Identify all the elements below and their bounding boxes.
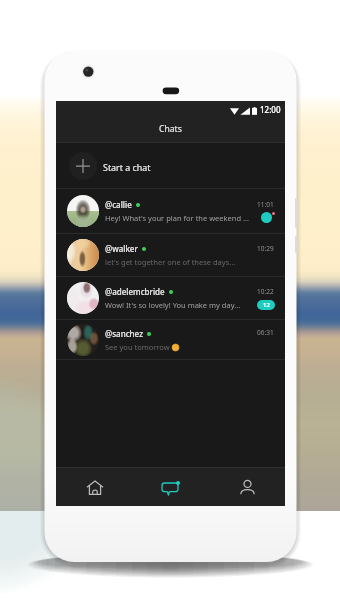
staticText: @walker xyxy=(105,243,138,254)
staticText: Wow! It's so lovely! You make my day... xyxy=(105,300,241,310)
staticText: See you tomorrow xyxy=(105,342,170,352)
button[interactable]: @callie xyxy=(56,189,285,233)
staticText: 10:29 xyxy=(257,244,274,253)
staticText: 11:01 xyxy=(257,200,274,209)
button[interactable]: Start a chat xyxy=(56,143,285,188)
staticText: let's get together one of these days... xyxy=(105,257,236,267)
button[interactable]: Home xyxy=(56,468,133,506)
staticText: Start a chat xyxy=(103,161,151,173)
staticText: Chats xyxy=(159,123,182,135)
staticText: 12 xyxy=(263,301,270,309)
staticText: 06:31 xyxy=(257,328,274,337)
staticText: 10:22 xyxy=(257,287,274,296)
button[interactable]: Chats xyxy=(133,468,209,506)
staticText: 12:00 xyxy=(260,104,281,115)
button[interactable]: Profile xyxy=(209,468,285,506)
staticText: @sanchez xyxy=(105,328,143,339)
button[interactable]: @sanchez xyxy=(56,320,285,359)
staticText: @adelemcbride xyxy=(105,286,165,297)
staticText: Hey! What's your plan for the weekend ..… xyxy=(105,213,249,223)
button[interactable]: @adelemcbride xyxy=(56,277,285,319)
staticText: @callie xyxy=(105,199,132,210)
button[interactable]: @walker xyxy=(56,234,285,276)
